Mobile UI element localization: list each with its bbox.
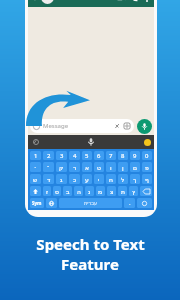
staticText: ג [60, 176, 63, 183]
button[interactable]: ך [130, 174, 140, 184]
staticText: 4 [73, 152, 77, 160]
staticText: ד [47, 176, 51, 183]
button[interactable]: א [82, 162, 92, 172]
button[interactable]: ן [118, 162, 128, 172]
staticText: ה [77, 188, 81, 195]
button[interactable]: ת [118, 186, 127, 196]
button[interactable]: Contact photo [41, 0, 54, 4]
button[interactable]: 1 [30, 151, 41, 160]
staticText: פ [145, 164, 149, 171]
button[interactable]: ם [130, 162, 140, 172]
button[interactable]: ח [106, 174, 116, 184]
button[interactable]: Shift [30, 186, 41, 196]
button[interactable]: . [124, 198, 135, 208]
staticText: ט [97, 164, 101, 171]
staticText: ח [109, 176, 113, 183]
staticText: 5 [85, 152, 89, 160]
staticText: ס [55, 188, 59, 195]
button[interactable]: מ [96, 186, 105, 196]
button[interactable]: 8 [118, 151, 128, 160]
button[interactable]: ג [56, 174, 67, 184]
button[interactable]: Enter [137, 198, 152, 208]
button[interactable]: Space [59, 198, 122, 208]
staticText: 8 [121, 152, 125, 160]
staticText: ת [121, 188, 125, 195]
button[interactable]: 7 [106, 151, 116, 160]
button[interactable]: ט [94, 162, 104, 172]
button[interactable]: ל [118, 174, 128, 184]
staticText: י [98, 176, 100, 183]
button[interactable]: Sym [30, 198, 44, 208]
button[interactable]: כ [69, 174, 80, 184]
staticText: . [129, 199, 131, 207]
button[interactable]: צ [107, 186, 116, 196]
button[interactable]: ש [30, 174, 41, 184]
staticText: עברית [84, 200, 98, 206]
button[interactable]: ד [43, 174, 54, 184]
button[interactable]: Record voice message [137, 119, 152, 134]
button[interactable]: Backspace [140, 186, 152, 196]
button[interactable]: Voice input [85, 136, 97, 148]
button[interactable]: ק [56, 162, 67, 172]
button[interactable]: ץ [129, 186, 138, 196]
button[interactable]: More options [141, 0, 152, 3]
staticText: ע [85, 176, 89, 183]
staticText: ־ [47, 164, 50, 171]
button[interactable]: 9 [130, 151, 140, 160]
button[interactable]: Voice call [128, 0, 141, 4]
button[interactable]: ה [74, 186, 83, 196]
staticText: Message [43, 122, 69, 130]
staticText: Feature [61, 254, 119, 274]
button[interactable]: ע [82, 174, 92, 184]
button[interactable]: ב [63, 186, 72, 196]
button[interactable]: 3 [56, 151, 67, 160]
staticText: 9 [133, 152, 137, 160]
button[interactable]: Switch language [46, 198, 57, 208]
staticText: ן [122, 164, 124, 171]
button[interactable]: ו [106, 162, 116, 172]
staticText: ק [59, 164, 64, 171]
button[interactable]: ר [69, 162, 80, 172]
staticText: 2 [47, 152, 51, 160]
staticText: 7 [109, 152, 113, 160]
staticText: ך [133, 176, 137, 183]
button[interactable]: נ [85, 186, 94, 196]
other: Attach file [114, 123, 120, 129]
button[interactable]: Back [30, 0, 41, 3]
staticText: ב [66, 188, 70, 195]
staticText: 1 [34, 152, 38, 160]
staticText: 0 [145, 152, 149, 160]
button[interactable]: ז [43, 186, 51, 196]
button[interactable]: Stickers [31, 137, 41, 147]
button[interactable]: 4 [69, 151, 80, 160]
button[interactable]: ף [142, 174, 152, 184]
staticText: ז [46, 188, 49, 195]
staticText: ׳ [34, 164, 37, 171]
button[interactable]: ס [53, 186, 61, 196]
button[interactable]: 2 [43, 151, 54, 160]
button[interactable]: Message [30, 119, 134, 133]
other: Camera [124, 123, 130, 129]
staticText: צ [110, 188, 114, 195]
button[interactable]: ׳ [30, 162, 41, 172]
staticText: נ [88, 188, 91, 195]
button[interactable]: Emoji [144, 139, 151, 146]
staticText: 3 [60, 152, 64, 160]
staticText: א [85, 164, 90, 171]
staticText: ם [133, 164, 137, 171]
staticText: 6 [97, 152, 101, 160]
staticText: כ [73, 176, 77, 183]
button[interactable]: 6 [94, 151, 104, 160]
button[interactable]: פ [142, 162, 152, 172]
staticText: ל [121, 176, 125, 183]
button[interactable]: 0 [142, 151, 152, 160]
staticText: Speech to Text [36, 234, 145, 254]
other: Pointer to microphone [26, 92, 90, 126]
staticText: Sym [32, 200, 42, 206]
button[interactable]: ־ [43, 162, 54, 172]
button[interactable]: י [94, 174, 104, 184]
staticText: ץ [132, 188, 136, 195]
button[interactable]: Video call [115, 0, 128, 4]
button[interactable]: 5 [82, 151, 92, 160]
